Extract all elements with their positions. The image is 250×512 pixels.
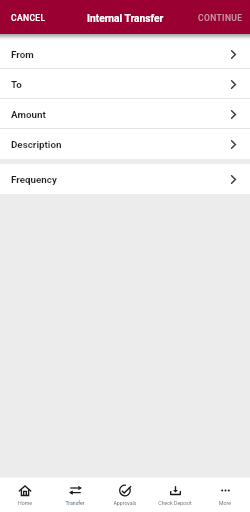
button[interactable]: Description: [0, 129, 250, 159]
button[interactable]: Frequency: [0, 164, 250, 194]
staticText: Home: [18, 500, 32, 506]
button[interactable]: Amount: [0, 99, 250, 129]
staticText: CONTINUE: [198, 13, 243, 23]
button[interactable]: From: [0, 39, 250, 69]
staticText: To: [11, 79, 22, 90]
staticText: More: [219, 500, 231, 506]
staticText: Description: [11, 139, 62, 150]
button[interactable]: More: [200, 478, 250, 512]
button[interactable]: To: [0, 69, 250, 99]
staticText: From: [11, 49, 34, 60]
staticText: Frequency: [11, 174, 57, 185]
staticText: Approvals: [113, 500, 137, 506]
button[interactable]: Approvals: [100, 478, 150, 512]
staticText: Transfer: [65, 500, 85, 506]
staticText: Amount: [11, 109, 46, 120]
button[interactable]: Transfer: [50, 478, 100, 512]
button[interactable]: CONTINUE: [190, 0, 250, 34]
button[interactable]: CANCEL: [0, 0, 57, 34]
button[interactable]: Check Deposit: [150, 478, 200, 512]
staticText: Internal Transfer: [87, 13, 164, 25]
staticText: CANCEL: [11, 13, 46, 23]
button[interactable]: Home: [0, 478, 50, 512]
staticText: Check Deposit: [158, 500, 192, 506]
